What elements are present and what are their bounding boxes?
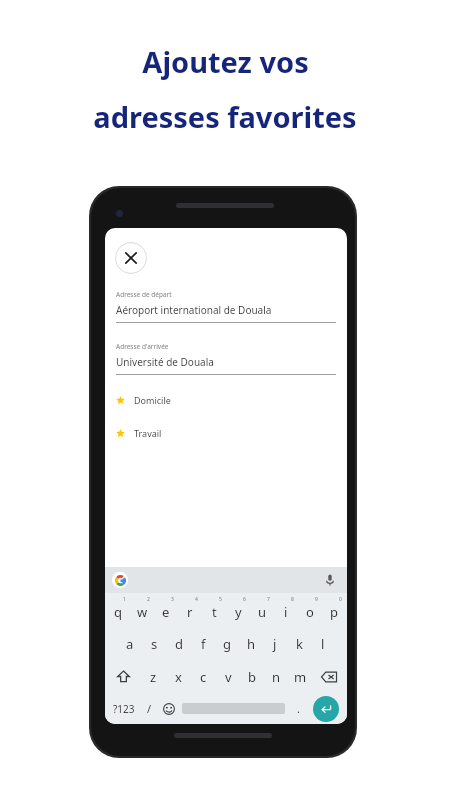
staticText: x: [175, 668, 182, 686]
staticText: s: [151, 635, 158, 653]
staticText: Ajoutez vos: [142, 42, 309, 81]
button[interactable]: z: [141, 660, 166, 693]
button[interactable]: f: [191, 627, 215, 660]
staticText: 4: [195, 596, 198, 603]
staticText: o: [306, 603, 314, 621]
staticText: f: [201, 635, 206, 653]
staticText: 1: [123, 596, 126, 603]
button[interactable]: s: [142, 627, 167, 660]
staticText: 0: [339, 596, 342, 603]
staticText: b: [248, 668, 256, 686]
staticText: i: [284, 603, 288, 621]
button[interactable]: 7: [250, 593, 274, 627]
button[interactable]: Adresse d'arrivée: [116, 342, 336, 375]
button[interactable]: 3: [154, 593, 178, 627]
button[interactable]: .: [289, 693, 308, 724]
staticText: d: [175, 635, 183, 653]
staticText: adresses favorites: [93, 97, 357, 136]
staticText: m: [294, 668, 307, 686]
staticText: Université de Douala: [116, 355, 214, 369]
button[interactable]: 8: [274, 593, 298, 627]
staticText: u: [258, 603, 267, 621]
staticText: .: [297, 701, 300, 716]
button[interactable]: Domicile: [116, 394, 336, 406]
staticText: Adresse d'arrivée: [116, 342, 169, 351]
button[interactable]: k: [287, 627, 311, 660]
staticText: Adresse de départ: [116, 290, 172, 299]
button[interactable]: g: [215, 627, 239, 660]
button[interactable]: Majuscule: [106, 660, 141, 693]
button[interactable]: 2: [130, 593, 154, 627]
staticText: 3: [171, 596, 174, 603]
button[interactable]: n: [264, 660, 288, 693]
staticText: 7: [267, 596, 270, 603]
button[interactable]: l: [311, 627, 335, 660]
button[interactable]: Entrée: [313, 696, 339, 722]
button[interactable]: x: [166, 660, 191, 693]
staticText: Travail: [134, 427, 162, 439]
button[interactable]: 5: [202, 593, 226, 627]
staticText: 9: [315, 596, 318, 603]
staticText: Domicile: [134, 394, 171, 406]
staticText: v: [225, 668, 232, 686]
button[interactable]: 1: [106, 593, 130, 627]
staticText: 5: [219, 596, 222, 603]
staticText: z: [150, 668, 157, 686]
staticText: /: [147, 701, 152, 716]
button[interactable]: Travail: [116, 427, 336, 439]
staticText: h: [247, 635, 256, 653]
staticText: 6: [243, 596, 246, 603]
button[interactable]: b: [240, 660, 264, 693]
staticText: q: [114, 603, 122, 621]
staticText: y: [235, 603, 242, 621]
staticText: n: [272, 668, 281, 686]
button[interactable]: 0: [322, 593, 346, 627]
button[interactable]: 6: [226, 593, 250, 627]
staticText: 2: [147, 596, 150, 603]
button[interactable]: h: [239, 627, 263, 660]
button[interactable]: c: [191, 660, 216, 693]
staticText: j: [273, 635, 277, 653]
button[interactable]: 9: [298, 593, 322, 627]
button[interactable]: a: [117, 627, 142, 660]
staticText: ?123: [113, 702, 135, 716]
button[interactable]: d: [167, 627, 191, 660]
button[interactable]: ?123: [108, 693, 140, 724]
staticText: w: [137, 603, 148, 621]
button[interactable]: 4: [178, 593, 202, 627]
button[interactable]: j: [263, 627, 287, 660]
button[interactable]: Adresse de départ: [116, 290, 336, 323]
button[interactable]: Fermer: [115, 242, 147, 274]
staticText: c: [200, 668, 207, 686]
staticText: 8: [291, 596, 294, 603]
button[interactable]: v: [216, 660, 240, 693]
button[interactable]: Google: [112, 572, 128, 588]
staticText: t: [212, 603, 217, 621]
staticText: g: [223, 635, 231, 653]
button[interactable]: Emoji: [159, 693, 178, 724]
staticText: p: [330, 603, 338, 621]
staticText: e: [162, 603, 170, 621]
button[interactable]: /: [140, 693, 159, 724]
staticText: a: [126, 635, 134, 653]
button[interactable]: Microphone: [322, 572, 338, 588]
button[interactable]: m: [288, 660, 312, 693]
staticText: k: [296, 635, 303, 653]
button[interactable]: Retour arrière: [312, 660, 346, 693]
staticText: r: [187, 603, 193, 621]
staticText: l: [321, 635, 325, 653]
staticText: Aéroport international de Douala: [116, 303, 272, 317]
